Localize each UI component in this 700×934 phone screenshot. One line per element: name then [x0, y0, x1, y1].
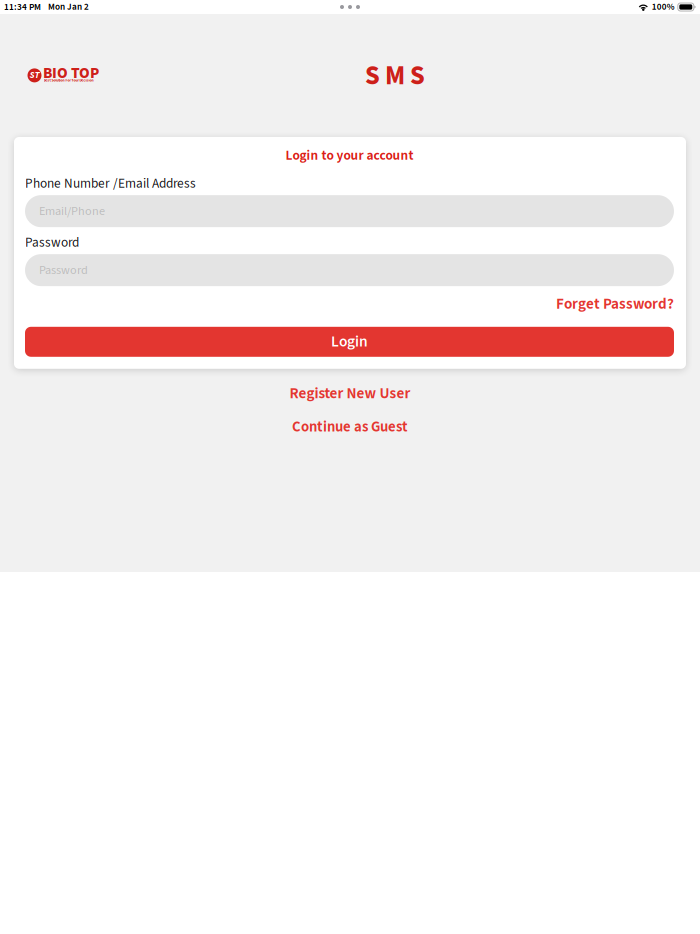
staticText: S M S [365, 57, 425, 95]
staticText: Forget Password? [556, 293, 674, 315]
staticText: ST [29, 68, 39, 82]
staticText: Login [331, 331, 368, 353]
staticText: Continue as Guest [292, 416, 408, 437]
button[interactable]: Register New User [289, 383, 410, 404]
staticText: 11:34 PM [4, 0, 41, 14]
staticText: Password [25, 233, 79, 252]
button[interactable]: Login [25, 327, 674, 357]
staticText: Login to your account [285, 146, 413, 165]
button[interactable]: Continue as Guest [292, 416, 408, 437]
staticText: Phone Number /Email Address [25, 174, 196, 193]
staticText: 100% [652, 0, 675, 13]
button[interactable]: Email/Phone [25, 195, 674, 227]
staticText: Password [39, 261, 88, 279]
staticText: Email/Phone [39, 202, 105, 220]
staticText: BIO TOP [43, 62, 99, 84]
button[interactable]: Password [25, 254, 674, 286]
button[interactable]: Forget Password? [25, 293, 674, 315]
staticText: Best Solution For Your Decision [43, 78, 93, 83]
staticText: Mon Jan 2 [48, 0, 89, 13]
staticText: Register New User [289, 383, 410, 404]
